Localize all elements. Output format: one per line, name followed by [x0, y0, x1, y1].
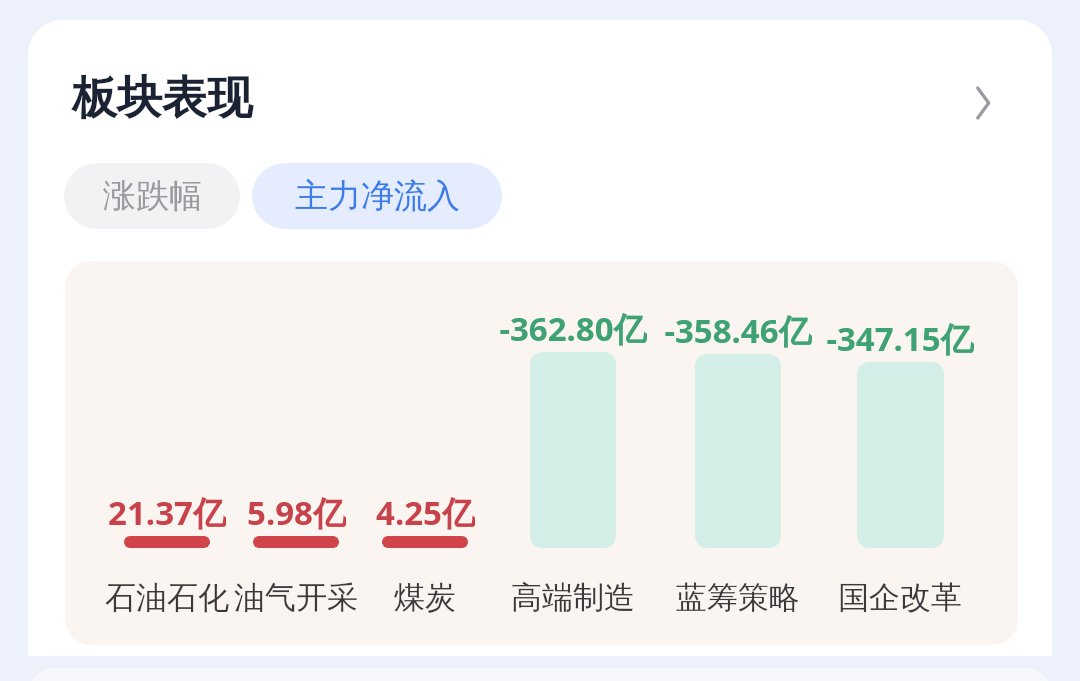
button[interactable]: 高端制造	[453, 575, 693, 619]
button[interactable]: 蓝筹策略	[618, 575, 858, 619]
staticText: 石油石化	[105, 578, 229, 617]
staticText: 国企改革	[838, 578, 962, 617]
staticText: 油气开采	[234, 578, 358, 617]
staticText: 高端制造	[511, 578, 635, 617]
staticText: 4.25亿	[376, 490, 475, 534]
button[interactable]: 涨跌幅	[64, 163, 240, 229]
button[interactable]: 油气开采	[176, 575, 416, 619]
staticText: 板块表现	[72, 70, 252, 127]
button[interactable]: More	[958, 77, 1010, 129]
staticText: 5.98亿	[247, 490, 346, 534]
staticText: 主力净流入	[295, 175, 460, 217]
staticText: 21.37亿	[108, 490, 226, 534]
staticText: 蓝筹策略	[676, 578, 800, 617]
staticText: 涨跌幅	[103, 175, 202, 217]
button[interactable]: 石油石化	[47, 575, 287, 619]
button[interactable]: 板块表现	[60, 62, 1020, 144]
button[interactable]: 主力净流入	[252, 163, 502, 229]
staticText: -362.80亿	[499, 306, 647, 350]
staticText: 煤炭	[394, 578, 456, 617]
staticText: -358.46亿	[664, 308, 812, 352]
button[interactable]: 煤炭	[305, 575, 545, 619]
button[interactable]: 国企改革	[780, 575, 1020, 619]
staticText: -347.15亿	[826, 316, 974, 360]
